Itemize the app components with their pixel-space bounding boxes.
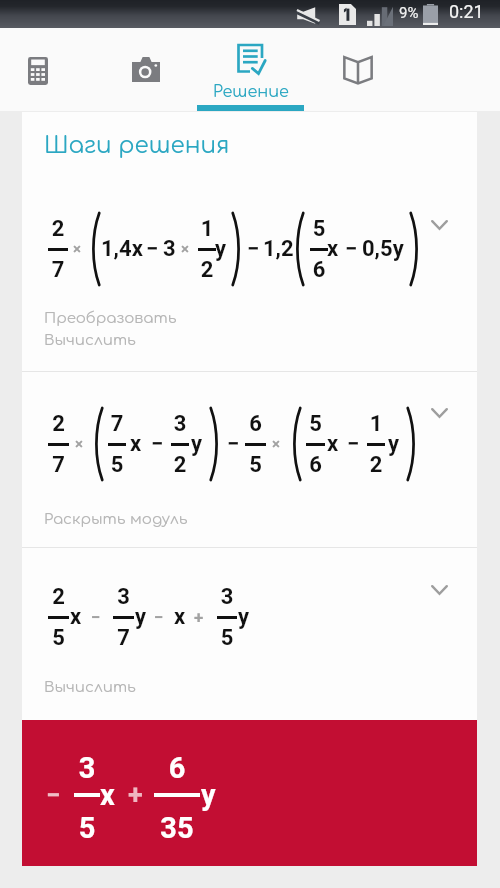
staticText: − (146, 236, 159, 262)
staticText: x (70, 604, 82, 630)
staticText: y (238, 604, 250, 630)
staticText: 0,5y (362, 236, 404, 262)
staticText: 2 (171, 452, 189, 478)
staticText: Вычислить (44, 332, 136, 349)
button[interactable]: Camera (90, 28, 197, 111)
staticText: y (201, 778, 216, 812)
staticText: − (345, 236, 358, 262)
staticText: 2 (48, 216, 68, 242)
staticText: y (191, 431, 203, 457)
staticText: − (247, 236, 260, 262)
staticText: 2 (48, 411, 69, 437)
staticText: 6 (154, 751, 200, 785)
staticText: × (272, 435, 280, 453)
staticText: y (135, 604, 147, 630)
staticText: 5 (48, 625, 69, 651)
staticText: + (128, 779, 143, 811)
staticText: 3 (163, 236, 176, 262)
staticText: 1 (367, 411, 385, 437)
staticText: 2 (48, 584, 69, 610)
staticText: Преобразовать (44, 310, 177, 327)
staticText: 2 (367, 452, 385, 478)
staticText: − (46, 780, 61, 810)
staticText: 6 (245, 411, 266, 437)
staticText: 9% (399, 4, 419, 22)
staticText: 1 (198, 216, 216, 242)
staticText: Шаги решения (44, 133, 230, 159)
button[interactable]: Calculator (0, 28, 90, 111)
staticText: y (388, 431, 400, 457)
staticText: 0:21 (449, 1, 484, 22)
button[interactable]: Expand step (422, 208, 456, 242)
staticText: Вычислить (44, 679, 136, 696)
staticText: 3 (217, 584, 237, 610)
staticText: 6 (306, 452, 325, 478)
staticText: + (194, 607, 204, 627)
staticText: × (73, 240, 81, 258)
staticText: 1,4x (101, 236, 143, 262)
staticText: − (91, 607, 101, 627)
staticText: 5 (310, 216, 328, 242)
staticText: 3 (74, 751, 100, 785)
staticText: × (181, 240, 189, 258)
staticText: x (327, 236, 339, 262)
staticText: 3 (171, 411, 189, 437)
staticText: − (151, 431, 164, 457)
button[interactable]: Expand step (422, 396, 456, 430)
staticText: 5 (306, 411, 325, 437)
staticText: 5 (108, 452, 126, 478)
button[interactable]: Textbook (304, 28, 411, 111)
staticText: − (154, 607, 164, 627)
staticText: 1,2 (263, 236, 294, 262)
staticText: Решение (213, 83, 289, 101)
staticText: 5 (74, 811, 100, 845)
staticText: 7 (48, 257, 68, 283)
staticText: x (100, 778, 115, 812)
staticText: 2 (198, 257, 216, 283)
staticText: − (227, 431, 240, 457)
staticText: 7 (48, 452, 69, 478)
staticText: 7 (113, 625, 134, 651)
staticText: 3 (113, 584, 134, 610)
staticText: 35 (154, 811, 200, 845)
staticText: x (327, 431, 339, 457)
staticText: Раскрыть модуль (44, 511, 188, 528)
staticText: x (130, 431, 142, 457)
staticText: × (75, 435, 83, 453)
staticText: 6 (310, 257, 328, 283)
staticText: x (174, 604, 186, 630)
staticText: 5 (245, 452, 266, 478)
button[interactable]: Expand step (422, 573, 456, 607)
staticText: 5 (217, 625, 237, 651)
staticText: − (347, 431, 360, 457)
staticText: y (215, 236, 227, 262)
button[interactable]: Решение (197, 28, 304, 111)
staticText: 7 (108, 411, 126, 437)
